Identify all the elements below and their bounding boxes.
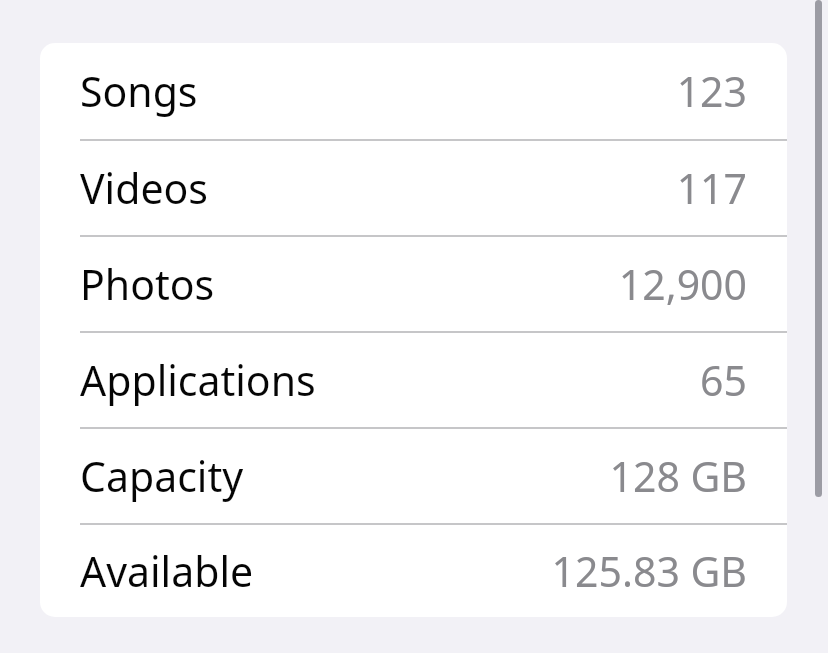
staticText: 128 GB bbox=[609, 448, 747, 504]
button[interactable]: Capacity bbox=[40, 427, 787, 523]
staticText: Songs bbox=[80, 63, 198, 119]
staticText: 65 bbox=[700, 352, 747, 408]
other: Scroll position indicator bbox=[815, 0, 822, 497]
staticText: Applications bbox=[80, 352, 316, 408]
staticText: 117 bbox=[676, 160, 747, 216]
staticText: Capacity bbox=[80, 448, 244, 504]
staticText: 123 bbox=[676, 63, 747, 119]
staticText: 12,900 bbox=[618, 256, 747, 312]
staticText: 125.83 GB bbox=[551, 543, 747, 599]
button[interactable]: Photos bbox=[40, 235, 787, 331]
staticText: Videos bbox=[80, 160, 208, 216]
staticText: Available bbox=[80, 543, 254, 599]
button[interactable]: Songs bbox=[40, 43, 787, 139]
staticText: Photos bbox=[80, 256, 215, 312]
button[interactable]: Videos bbox=[40, 139, 787, 235]
button[interactable]: Available bbox=[40, 523, 787, 617]
button[interactable]: Applications bbox=[40, 331, 787, 427]
